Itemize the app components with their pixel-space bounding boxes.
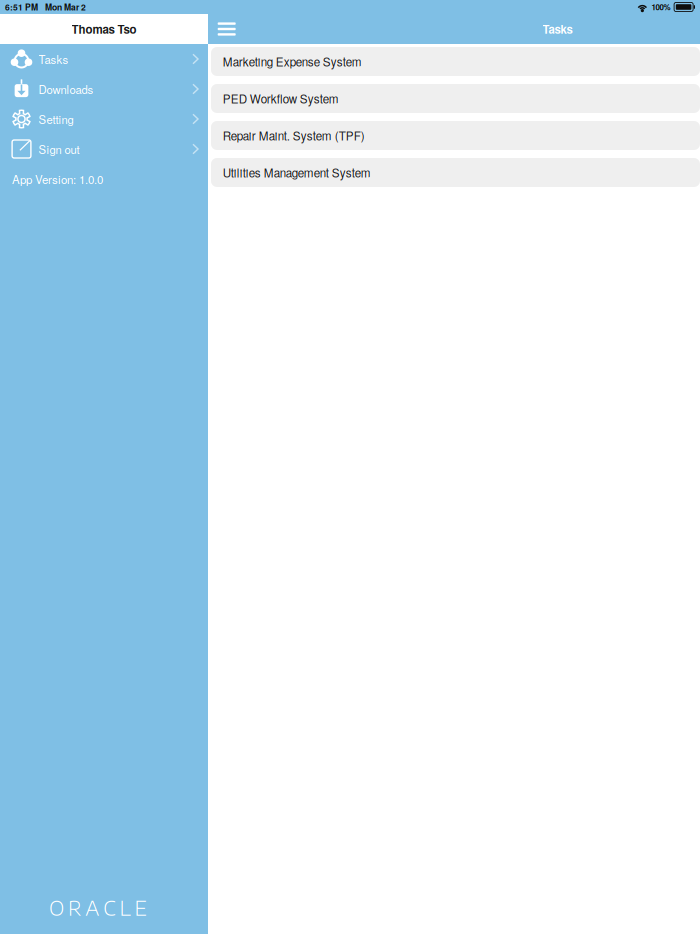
- button[interactable]: Setting: [0, 104, 208, 134]
- staticText: Marketing Expense System: [223, 53, 362, 70]
- staticText: Tasks: [38, 51, 68, 67]
- staticText: Sign out: [38, 141, 79, 157]
- staticText: Thomas Tso: [71, 21, 136, 37]
- staticText: Downloads: [38, 81, 93, 97]
- staticText: Repair Maint. System (TPF): [223, 127, 365, 144]
- staticText: Tasks: [542, 21, 572, 37]
- button[interactable]: Downloads: [0, 74, 208, 104]
- button[interactable]: Sign out: [0, 134, 208, 164]
- button[interactable]: Marketing Expense System: [211, 47, 700, 76]
- button[interactable]: PED Workflow System: [211, 84, 700, 113]
- staticText: App Version: 1.0.0: [12, 171, 103, 187]
- button[interactable]: Tasks: [0, 44, 208, 74]
- button[interactable]: Utilities Management System: [211, 158, 700, 187]
- staticText: Utilities Management System: [223, 164, 371, 181]
- button[interactable]: Menu: [208, 14, 254, 44]
- staticText: PED Workflow System: [223, 90, 339, 107]
- staticText: 100%: [652, 1, 671, 13]
- staticText: ORACLE: [49, 896, 146, 920]
- staticText: Setting: [38, 111, 73, 127]
- button[interactable]: Repair Maint. System (TPF): [211, 121, 700, 150]
- staticText: 6:51 PM: [5, 1, 38, 13]
- staticText: Mon Mar 2: [45, 1, 86, 13]
